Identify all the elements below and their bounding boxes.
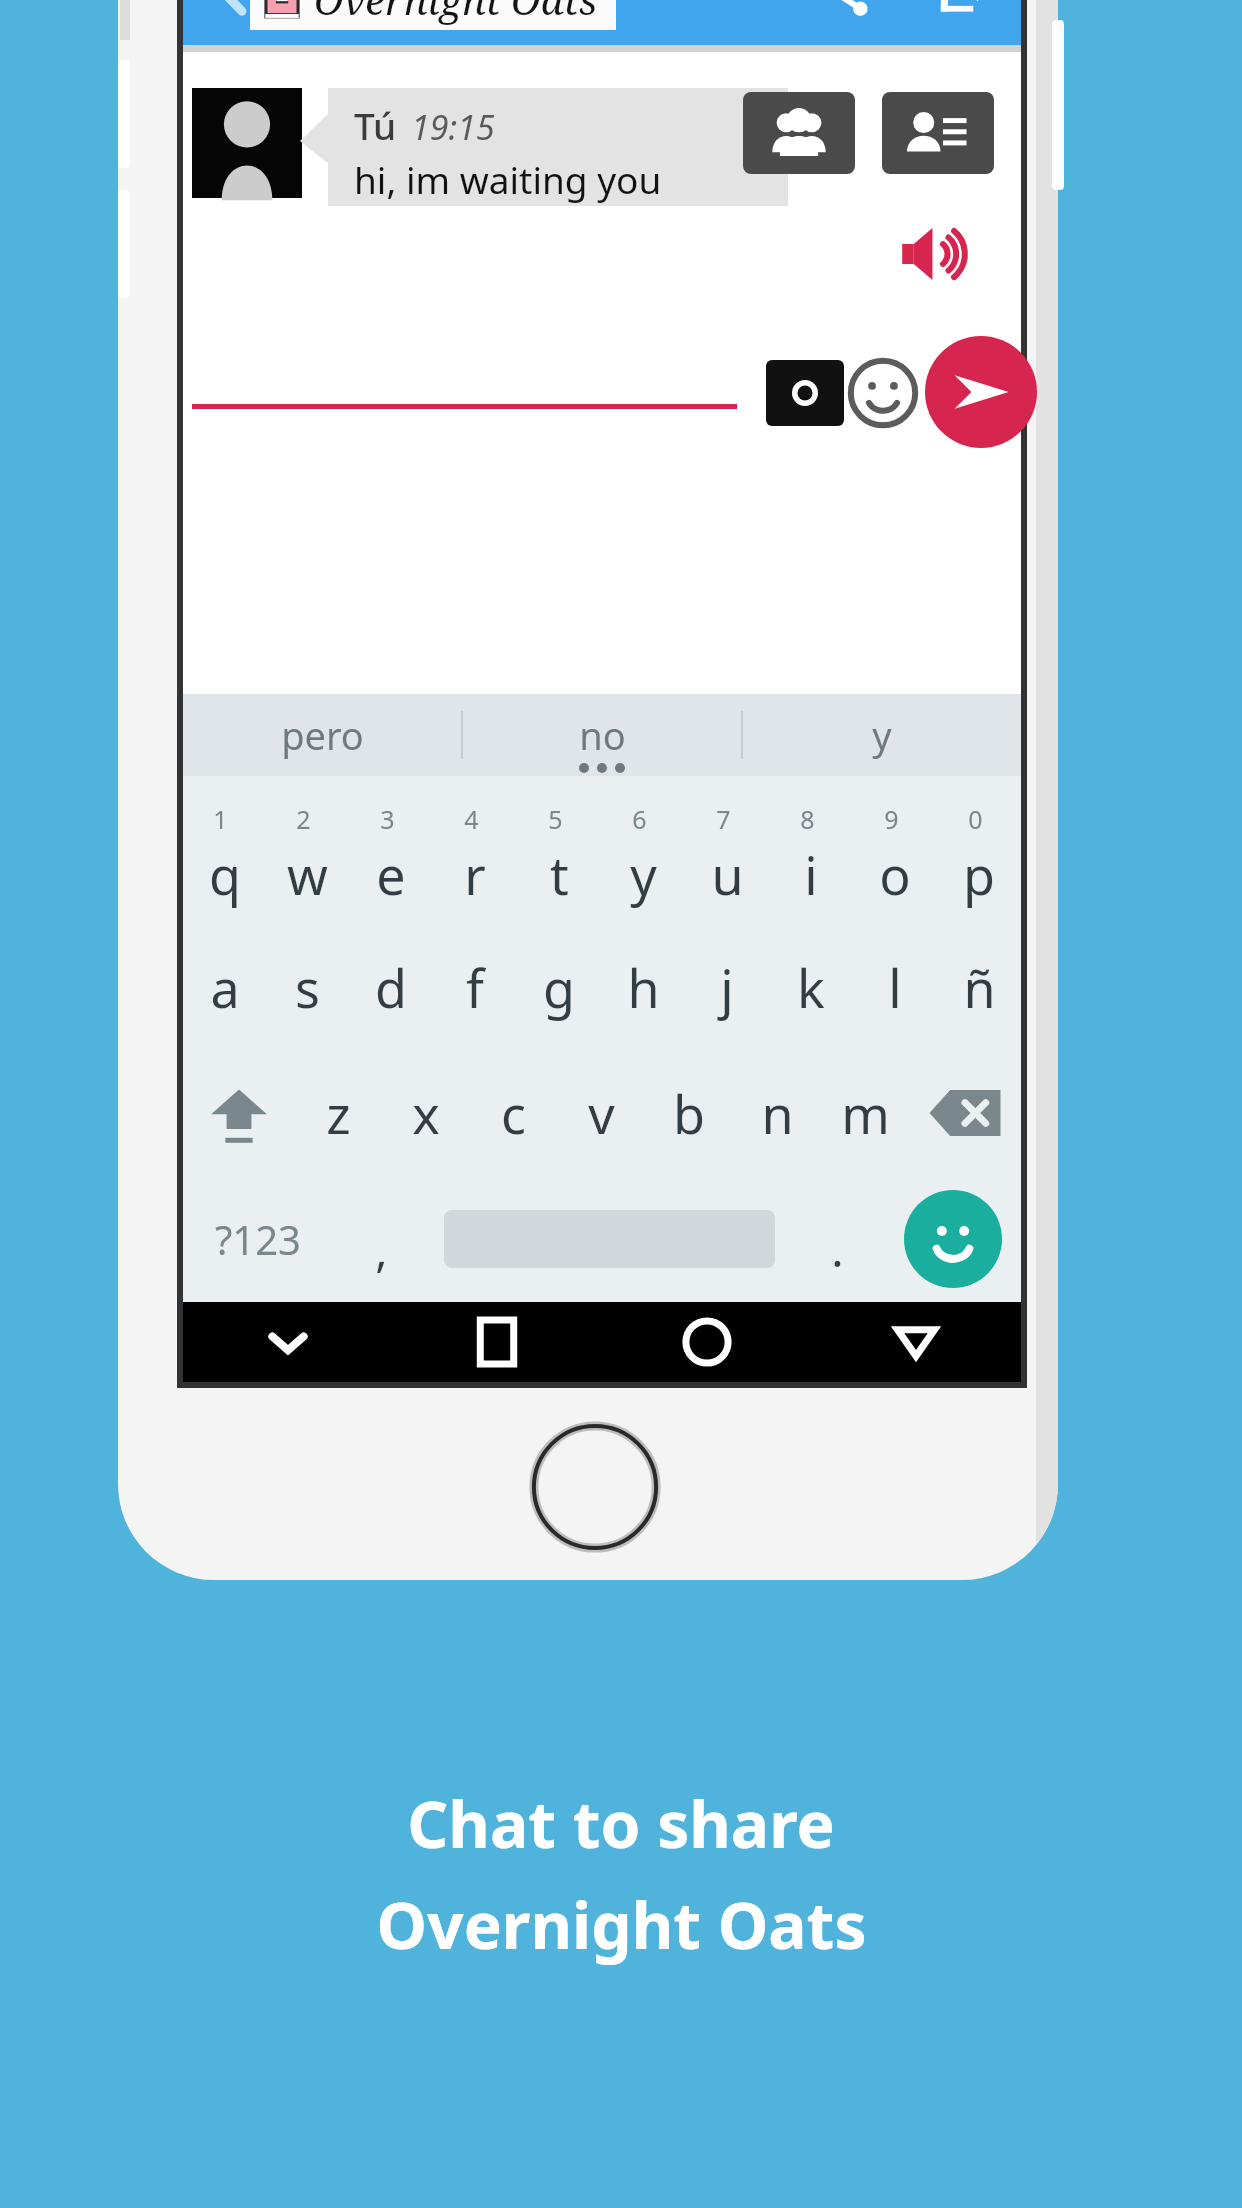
button[interactable]: Hide keyboard <box>246 1302 330 1382</box>
button[interactable]: y <box>743 694 1021 776</box>
button[interactable]: v <box>557 1050 645 1176</box>
staticText: j <box>720 952 734 1023</box>
button[interactable]: k <box>769 924 853 1050</box>
staticText: no <box>579 709 626 761</box>
staticText: g <box>543 952 575 1023</box>
staticText: y <box>872 709 892 761</box>
staticText: 7 <box>716 802 731 836</box>
button[interactable]: m <box>821 1050 909 1176</box>
button[interactable]: Emoji keyboard <box>904 1190 1002 1288</box>
staticText: b <box>673 1078 705 1149</box>
button[interactable]: , <box>333 1176 429 1302</box>
button[interactable]: Overnight Oats <box>250 0 616 30</box>
button[interactable]: f <box>433 924 517 1050</box>
staticText: m <box>841 1078 890 1149</box>
button[interactable]: Group members <box>743 92 855 174</box>
button[interactable]: . <box>789 1176 885 1302</box>
staticText: 8 <box>800 802 815 836</box>
staticText: Overnight Oats <box>376 1881 867 1968</box>
button[interactable] <box>429 1176 789 1302</box>
button[interactable]: Camera <box>766 360 844 426</box>
staticText: 1 <box>213 802 228 836</box>
button[interactable]: j <box>685 924 769 1050</box>
staticText: 3 <box>380 802 395 836</box>
button[interactable]: Contact list <box>882 92 994 174</box>
button[interactable]: a <box>183 924 266 1050</box>
button[interactable]: z <box>295 1050 382 1176</box>
staticText: 5 <box>548 802 563 836</box>
staticText: l <box>888 952 902 1023</box>
button[interactable]: Back <box>874 1302 958 1382</box>
staticText: , <box>375 1218 388 1281</box>
staticText: u <box>711 839 744 910</box>
button[interactable]: x <box>382 1050 469 1176</box>
staticText: y <box>630 839 657 910</box>
button[interactable]: b <box>645 1050 733 1176</box>
button[interactable]: 8 <box>769 800 853 924</box>
staticText: 4 <box>464 802 479 836</box>
button[interactable]: l <box>853 924 937 1050</box>
button[interactable]: pero <box>183 694 461 776</box>
staticText: w <box>287 839 328 910</box>
button[interactable]: Recents <box>455 1302 539 1382</box>
staticText: Chat to share <box>407 1780 835 1867</box>
button[interactable]: Exit <box>925 0 997 26</box>
staticText: d <box>375 952 407 1023</box>
button[interactable]: 9 <box>853 800 937 924</box>
button[interactable]: h <box>601 924 685 1050</box>
staticText: pero <box>281 709 364 761</box>
button[interactable]: g <box>517 924 601 1050</box>
staticText: p <box>963 839 995 910</box>
button[interactable]: c <box>469 1050 557 1176</box>
staticText: 2 <box>296 802 311 836</box>
staticText: n <box>761 1078 794 1149</box>
button[interactable]: 3 <box>349 800 433 924</box>
staticText: e <box>376 839 406 910</box>
staticText: h <box>627 952 660 1023</box>
staticText: ?123 <box>215 1212 301 1266</box>
staticText: s <box>295 952 320 1023</box>
staticText: a <box>210 952 240 1023</box>
staticText: 9 <box>884 802 899 836</box>
button[interactable]: 0 <box>937 800 1021 924</box>
staticText: x <box>412 1078 440 1149</box>
staticText: . <box>831 1218 844 1281</box>
button[interactable]: Emoji <box>848 358 918 428</box>
button[interactable]: 1 <box>183 800 266 924</box>
button[interactable]: s <box>266 924 349 1050</box>
staticText: r <box>464 839 486 910</box>
button[interactable]: Sound <box>895 218 967 290</box>
staticText: 0 <box>968 802 983 836</box>
staticText: ñ <box>963 952 996 1023</box>
staticText: Overnight Oats <box>314 0 598 26</box>
staticText: 6 <box>632 802 647 836</box>
button[interactable]: 7 <box>685 800 769 924</box>
button[interactable]: 6 <box>601 800 685 924</box>
staticText: v <box>588 1078 615 1149</box>
button[interactable]: 2 <box>266 800 349 924</box>
button[interactable]: Back <box>196 0 270 26</box>
button[interactable]: 4 <box>433 800 517 924</box>
staticText: Tú <box>354 100 397 150</box>
staticText: c <box>501 1078 526 1149</box>
button[interactable]: Home <box>665 1302 749 1382</box>
staticText: f <box>466 952 484 1023</box>
button[interactable]: 5 <box>517 800 601 924</box>
button[interactable]: n <box>733 1050 821 1176</box>
staticText: z <box>326 1078 351 1149</box>
staticText: o <box>879 839 911 910</box>
button[interactable]: d <box>349 924 433 1050</box>
button[interactable]: Send <box>925 336 1037 448</box>
staticText: i <box>804 839 818 910</box>
button[interactable]: ñ <box>937 924 1021 1050</box>
staticText: hi, im waiting you question <box>354 154 788 206</box>
staticText: t <box>550 839 569 910</box>
staticText: 19:15 <box>411 104 495 150</box>
button[interactable]: Backspace <box>909 1050 1021 1176</box>
button[interactable]: Share <box>810 0 882 26</box>
button[interactable]: no <box>463 694 741 776</box>
staticText: q <box>209 839 241 910</box>
staticText: k <box>797 952 825 1023</box>
button[interactable]: ?123 <box>183 1176 333 1302</box>
button[interactable]: Shift <box>183 1050 295 1176</box>
